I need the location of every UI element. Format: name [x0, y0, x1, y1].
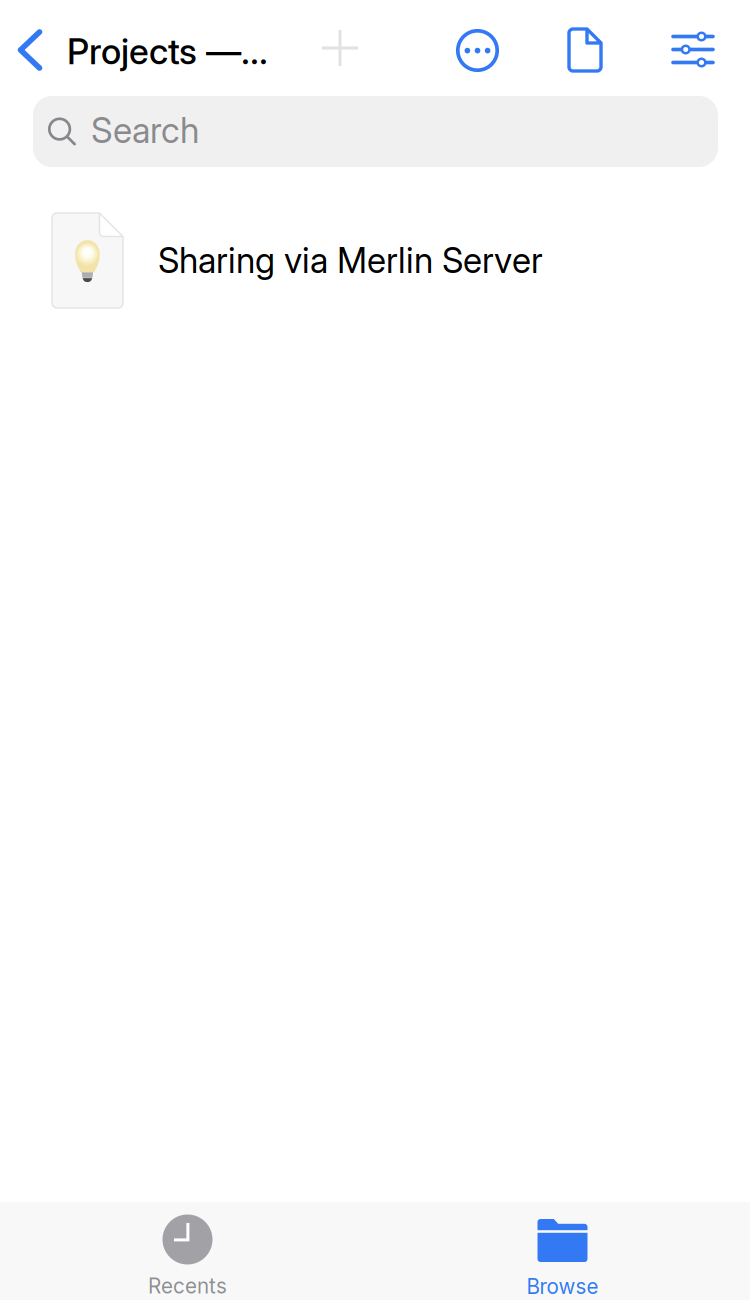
- staticText: Recents: [148, 1273, 227, 1298]
- button[interactable]: Browse: [375, 1202, 750, 1300]
- button[interactable]: Recents: [0, 1202, 375, 1300]
- staticText: Sharing via Merlin Server: [158, 240, 543, 281]
- button[interactable]: Sharing via Merlin Server: [0, 213, 750, 308]
- button[interactable]: New Document: [569, 29, 601, 71]
- button[interactable]: Back: [17, 29, 43, 71]
- button[interactable]: Projects —...: [67, 30, 268, 73]
- staticText: Projects —...: [67, 30, 268, 73]
- button[interactable]: View Options: [672, 31, 714, 68]
- button[interactable]: Search: [33, 96, 718, 167]
- button[interactable]: Add: [322, 30, 358, 66]
- staticText: Search: [91, 109, 199, 151]
- staticText: Browse: [526, 1274, 598, 1299]
- button[interactable]: More: [456, 29, 499, 72]
